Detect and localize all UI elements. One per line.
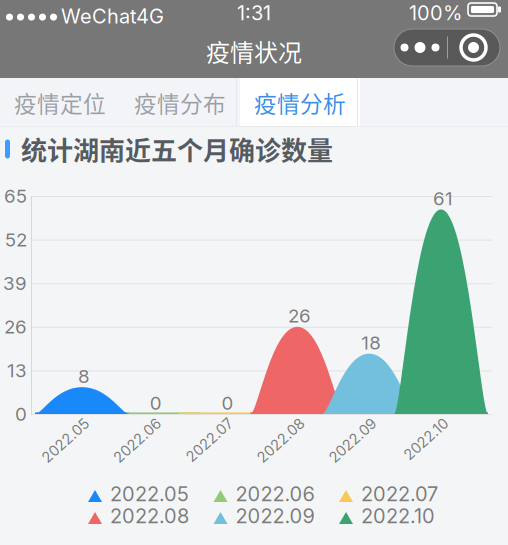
staticText: 8 <box>78 365 90 387</box>
staticText: 2022.06 <box>235 482 314 506</box>
staticText: 52 <box>5 228 27 251</box>
staticText: 疫情定位 <box>14 86 106 119</box>
button[interactable]: 疫情分布 <box>120 78 240 127</box>
staticText: 100% <box>409 1 462 25</box>
staticText: 疫情分布 <box>134 86 226 119</box>
staticText: 2022.10 <box>392 412 446 430</box>
staticText: 26 <box>288 304 311 327</box>
staticText: 2022.05 <box>110 482 189 506</box>
staticText: 61 <box>433 187 453 210</box>
button[interactable]: 2022.10 <box>339 506 441 526</box>
staticText: 65 <box>4 185 27 207</box>
staticText: 疫情状况 <box>206 34 302 68</box>
staticText: 0 <box>15 403 27 425</box>
staticText: 2022.10 <box>361 504 435 528</box>
staticText: 2022.05 <box>29 412 87 430</box>
button[interactable]: 疫情分析 <box>240 78 360 127</box>
staticText: 2022.07 <box>174 412 231 430</box>
staticText: 2022.07 <box>361 482 438 506</box>
staticText: 2022.06 <box>101 412 159 430</box>
button[interactable]: 2022.08 <box>88 506 190 526</box>
button[interactable]: Mini program menu <box>394 29 500 66</box>
staticText: 0 <box>222 392 234 414</box>
staticText: 18 <box>361 331 381 354</box>
staticText: 39 <box>3 272 27 294</box>
staticText: 统计湖南近五个月确诊数量 <box>21 130 333 168</box>
button[interactable]: 2022.07 <box>339 484 441 504</box>
staticText: 26 <box>4 315 27 338</box>
button[interactable]: 疫情定位 <box>0 78 120 127</box>
staticText: 2022.08 <box>110 504 189 528</box>
staticText: 13 <box>7 359 27 382</box>
staticText: 1:31 <box>237 1 271 25</box>
button[interactable]: 2022.05 <box>88 484 190 504</box>
button[interactable]: 2022.09 <box>213 506 315 526</box>
button[interactable]: 2022.06 <box>213 484 315 504</box>
staticText: 疫情分析 <box>254 86 346 119</box>
staticText: 2022.09 <box>316 412 374 430</box>
staticText: WeChat4G <box>61 4 164 28</box>
staticText: 0 <box>150 392 162 414</box>
staticText: 2022.09 <box>235 504 314 528</box>
staticText: 2022.08 <box>244 412 302 430</box>
